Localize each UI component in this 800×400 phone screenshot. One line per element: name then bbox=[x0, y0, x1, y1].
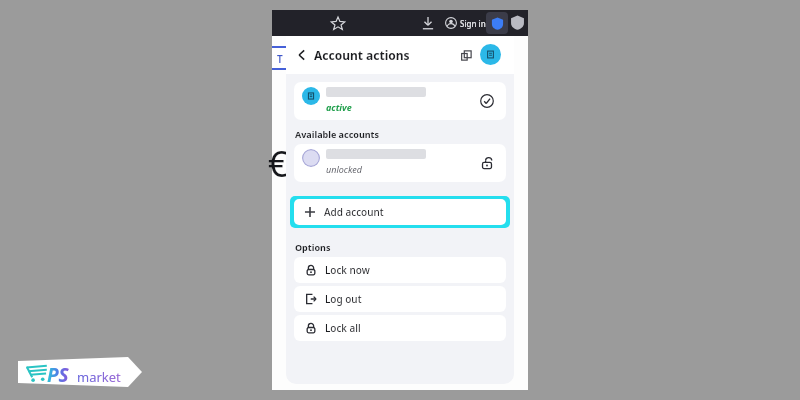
button[interactable]: Leo bbox=[510, 15, 525, 30]
staticText: active bbox=[326, 101, 352, 113]
button[interactable]: active bbox=[294, 82, 506, 120]
button[interactable]: Lock now bbox=[294, 257, 506, 283]
button[interactable]: Bookmark bbox=[330, 15, 346, 31]
button[interactable]: Sign in bbox=[445, 14, 486, 32]
staticText: Lock all bbox=[325, 321, 361, 335]
staticText: Sign in bbox=[460, 18, 486, 29]
staticText: Add account bbox=[324, 205, 384, 219]
button[interactable]: Shields bbox=[486, 12, 508, 34]
button[interactable]: Downloads bbox=[420, 15, 436, 31]
button[interactable]: Log out bbox=[294, 286, 506, 312]
staticText: unlocked bbox=[326, 163, 362, 175]
button[interactable]: Open in new window bbox=[458, 47, 475, 64]
staticText: Options bbox=[295, 241, 331, 253]
staticText: Log out bbox=[325, 292, 362, 306]
button[interactable]: Account bbox=[480, 44, 501, 65]
staticText: Available accounts bbox=[295, 128, 380, 140]
staticText: Lock now bbox=[325, 263, 370, 277]
staticText: € bbox=[268, 139, 289, 188]
staticText: market bbox=[77, 368, 121, 386]
button[interactable]: Back bbox=[292, 45, 312, 65]
staticText: T bbox=[277, 52, 283, 66]
staticText: PS bbox=[47, 362, 69, 388]
staticText: Account actions bbox=[314, 47, 410, 63]
button[interactable]: Lock all bbox=[294, 315, 506, 341]
button[interactable]: Add account bbox=[294, 199, 506, 225]
button[interactable]: unlocked bbox=[294, 144, 506, 182]
